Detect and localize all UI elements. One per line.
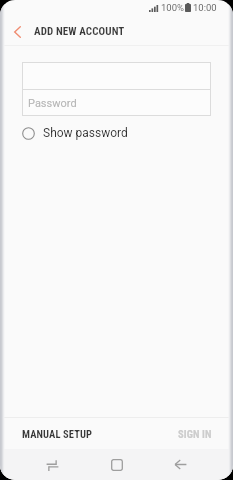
staticText: 100% (161, 2, 184, 13)
button[interactable]: Back (159, 449, 202, 480)
button[interactable]: Recents (31, 449, 74, 480)
button[interactable]: Show password (22, 123, 128, 143)
button[interactable]: MANUAL SETUP (0, 418, 116, 449)
button[interactable]: Home (74, 449, 159, 480)
staticText: SIGN IN (178, 428, 212, 440)
button[interactable]: Navigate up (0, 16, 28, 47)
button[interactable]: SIGN IN (116, 418, 233, 449)
staticText: Show password (43, 126, 128, 140)
staticText: 10:00 (193, 2, 217, 13)
staticText: ADD NEW ACCOUNT (34, 25, 125, 38)
staticText: MANUAL SETUP (22, 428, 93, 440)
staticText: Password (28, 97, 77, 110)
